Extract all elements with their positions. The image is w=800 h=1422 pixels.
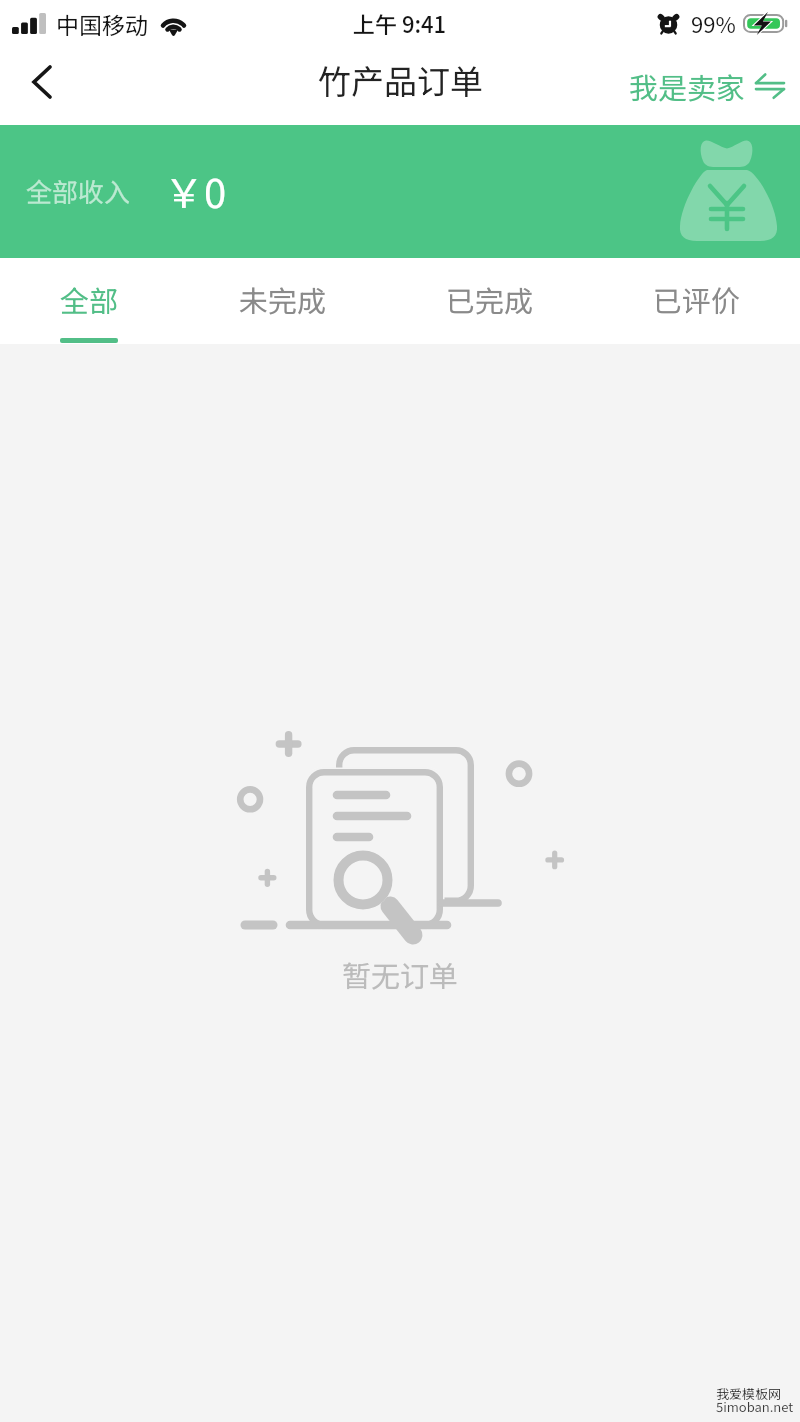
staticText: 上午 9:41 <box>353 7 447 39</box>
staticText: 全部收入 <box>26 172 131 210</box>
button[interactable]: 全部 <box>0 258 189 344</box>
staticText: ￥0 <box>164 162 227 220</box>
staticText: 中国移动 <box>56 7 148 40</box>
other: Switch role <box>756 74 784 98</box>
button[interactable]: 全部收入 ￥0 <box>0 125 800 258</box>
other: No orders illustration <box>230 720 570 965</box>
staticText: 5imoban.net <box>716 1397 794 1416</box>
staticText: 99% <box>691 7 736 39</box>
button[interactable]: 我是卖家 <box>0 46 800 125</box>
button[interactable]: 未完成 <box>183 258 383 344</box>
staticText: 未完成 <box>239 278 327 320</box>
staticText: 全部 <box>60 278 119 320</box>
staticText: 已完成 <box>446 278 534 320</box>
staticText: 我是卖家 <box>629 65 746 107</box>
other: Income <box>681 139 777 241</box>
staticText: 竹产品订单 <box>318 56 483 104</box>
staticText: 我爱模板网 <box>716 1384 782 1403</box>
button[interactable]: 已完成 <box>390 258 590 344</box>
button[interactable]: Back <box>0 46 84 125</box>
button[interactable]: 已评价 <box>597 258 797 344</box>
staticText: 已评价 <box>653 278 741 320</box>
staticText: 暂无订单 <box>342 953 459 995</box>
